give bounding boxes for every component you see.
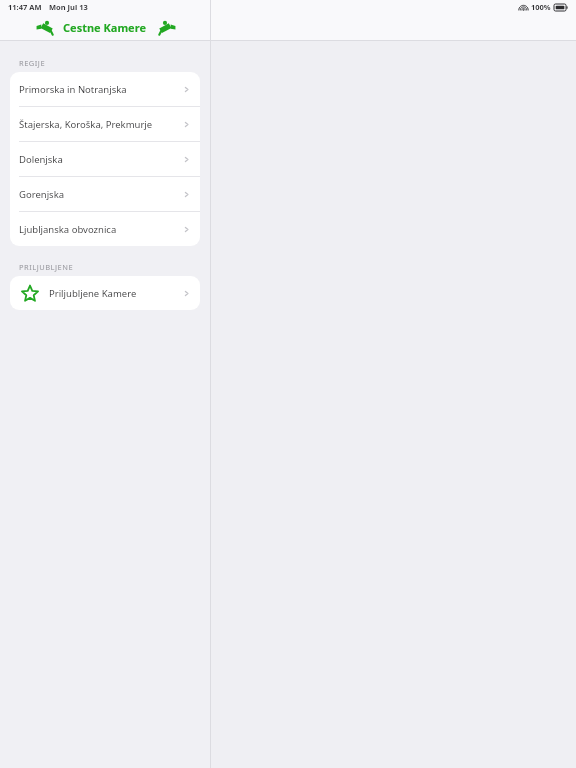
staticText: Cestne Kamere [63,20,146,35]
button[interactable]: Primorska in Notranjska [10,72,200,106]
button[interactable]: Dolenjska [10,142,200,176]
staticText: Primorska in Notranjska [19,83,127,96]
staticText: Gorenjska [19,188,65,201]
button[interactable]: Gorenjska [10,177,200,211]
staticText: REGIJE [19,58,46,68]
button[interactable]: Štajerska, Koroška, Prekmurje [10,107,200,141]
staticText: PRILJUBLJENE [19,262,74,272]
button[interactable]: Road cameras [33,15,57,39]
button[interactable]: Priljubljene Kamere [10,276,200,310]
staticText: Štajerska, Koroška, Prekmurje [19,118,153,131]
staticText: Priljubljene Kamere [49,287,137,300]
button[interactable]: Ljubljanska obvoznica [10,212,200,246]
staticText: 11:47 AM [8,2,42,12]
staticText: 100% [531,2,551,12]
staticText: Dolenjska [19,153,63,166]
staticText: Mon Jul 13 [49,2,88,12]
button[interactable]: Road cameras [154,15,178,39]
staticText: Ljubljanska obvoznica [19,223,117,236]
